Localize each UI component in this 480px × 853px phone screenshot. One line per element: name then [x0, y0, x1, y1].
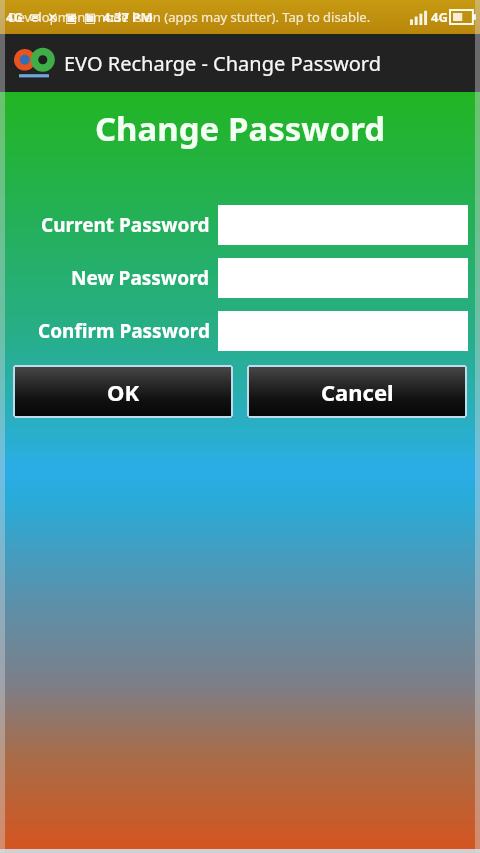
staticText: EVO Recharge - Change Password	[64, 50, 381, 77]
staticText: Current Password	[41, 212, 210, 238]
button[interactable]: OK	[13, 365, 233, 418]
button[interactable]: Cancel	[247, 365, 467, 418]
staticText: OK	[107, 377, 140, 407]
staticText: Confirm Password	[38, 318, 210, 344]
staticText: 4G	[431, 8, 448, 26]
staticText: 4G ✉ ✕ ▣ ▣ 4:37 PM	[6, 8, 153, 26]
staticText: New Password	[71, 265, 210, 291]
staticText: Change Password	[0, 106, 480, 151]
staticText: Development mode is on (apps may stutter…	[8, 8, 371, 26]
staticText: Cancel	[321, 377, 394, 407]
